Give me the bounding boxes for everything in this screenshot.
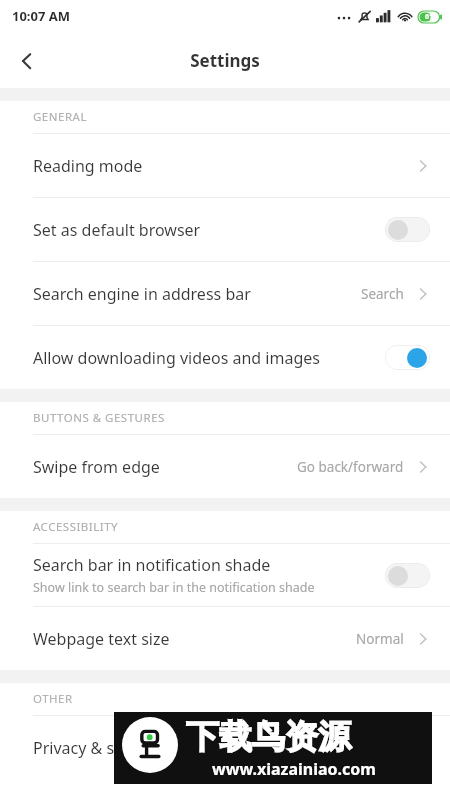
staticText: 61: [425, 12, 434, 22]
button[interactable]: Toggle on: [385, 345, 430, 370]
staticText: GENERAL: [33, 109, 87, 125]
staticText: 10:07 AM: [12, 7, 71, 25]
button[interactable]: Allow downloading videos and images: [0, 326, 450, 389]
staticText: Search bar in notification shade: [33, 554, 271, 576]
staticText: Search engine in address bar: [33, 283, 251, 305]
button[interactable]: Toggle off: [385, 217, 430, 242]
button[interactable]: Swipe from edge: [0, 435, 450, 498]
staticText: Settings: [0, 49, 450, 72]
staticText: 下载鸟资源: [186, 716, 351, 758]
staticText: Swipe from edge: [33, 456, 160, 478]
staticText: Allow downloading videos and images: [33, 347, 320, 369]
staticText: Reading mode: [33, 155, 143, 177]
button[interactable]: Search engine in address bar: [0, 262, 450, 325]
staticText: ACCESSIBILITY: [33, 519, 119, 535]
button[interactable]: Search bar in notification shade: [0, 544, 450, 606]
staticText: Go back/forward: [297, 458, 404, 476]
button[interactable]: Webpage text size: [0, 607, 450, 670]
button[interactable]: Toggle off: [385, 563, 430, 588]
staticText: OTHER: [33, 691, 73, 707]
button[interactable]: Set as default browser: [0, 198, 450, 261]
staticText: Search: [361, 285, 404, 303]
staticText: Set as default browser: [33, 219, 201, 241]
staticText: Webpage text size: [33, 628, 170, 650]
staticText: Normal: [356, 630, 404, 648]
button[interactable]: Back: [0, 34, 54, 88]
staticText: Privacy & security: [33, 737, 166, 759]
staticText: Show link to search bar in the notificat…: [33, 579, 315, 596]
staticText: www.xiazainiao.com: [212, 758, 376, 780]
button[interactable]: Privacy & security: [0, 716, 450, 779]
button[interactable]: Reading mode: [0, 134, 450, 197]
staticText: BUTTONS & GESTURES: [33, 410, 165, 426]
